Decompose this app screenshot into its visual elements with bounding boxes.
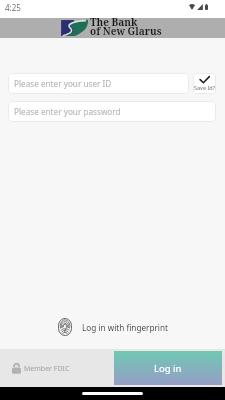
staticText: 4:25 bbox=[5, 2, 21, 13]
staticText: Save Id? bbox=[194, 84, 216, 91]
staticText: of New Glarus bbox=[90, 24, 162, 38]
button[interactable]: Please enter your password bbox=[8, 101, 216, 122]
button[interactable]: Please enter your user ID bbox=[8, 73, 189, 94]
staticText: Please enter your user ID bbox=[14, 78, 112, 89]
staticText: The Bank bbox=[90, 15, 138, 29]
staticText: Log in bbox=[154, 362, 182, 375]
button[interactable]: Save Id bbox=[193, 73, 216, 94]
button[interactable]: Log in bbox=[114, 351, 222, 385]
staticText: Please enter your password bbox=[14, 106, 121, 117]
staticText: Member FDIC bbox=[24, 364, 70, 374]
staticText: Log in with fingerprint bbox=[82, 322, 168, 333]
button[interactable]: Log in with fingerprint bbox=[0, 318, 225, 336]
